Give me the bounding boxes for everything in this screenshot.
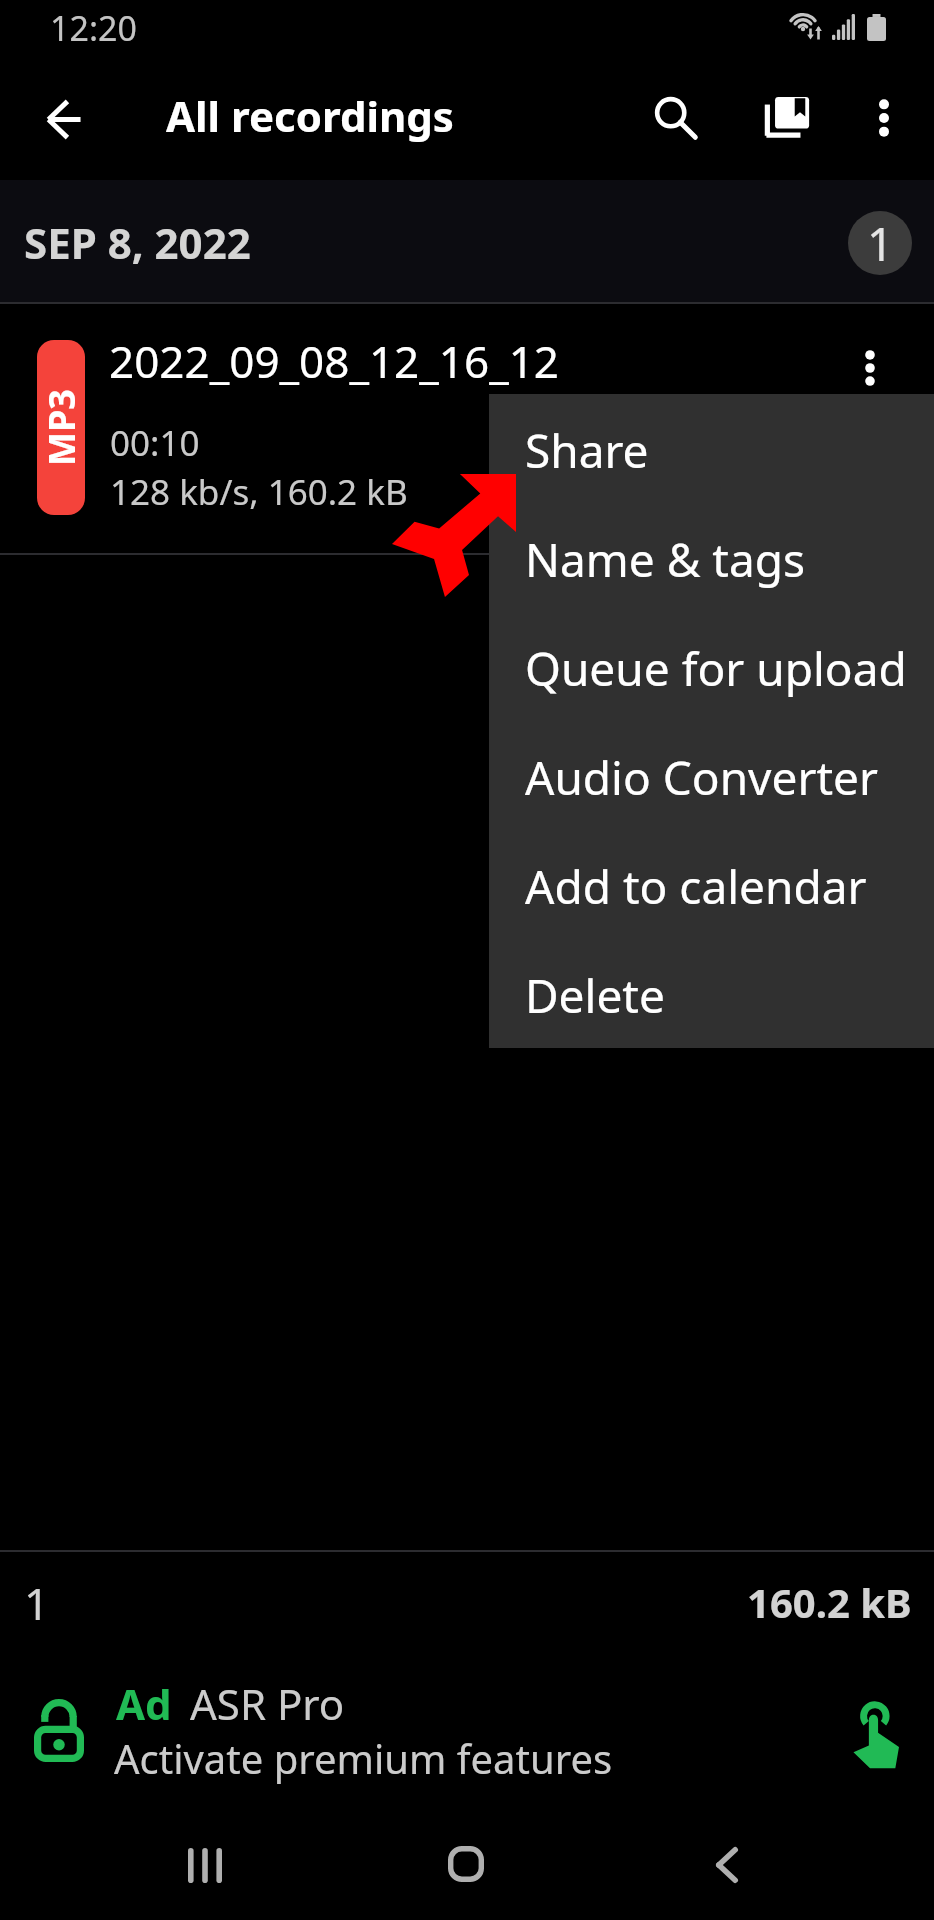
button[interactable]: Queue for upload — [489, 614, 934, 723]
staticText: Add to calendar — [525, 855, 867, 918]
staticText: SEP 8, 2022 — [24, 214, 251, 271]
staticText: Delete — [525, 964, 665, 1027]
staticText: Name & tags — [525, 528, 806, 591]
staticText: Activate premium features — [114, 1731, 613, 1785]
staticText: Share — [525, 419, 649, 482]
staticText: 1 — [24, 1573, 50, 1633]
staticText: 1 — [867, 212, 894, 275]
staticText: Queue for upload — [525, 637, 907, 700]
button[interactable]: Audio Converter — [489, 723, 934, 832]
staticText: MP3 — [37, 340, 85, 515]
button[interactable]: 1 — [848, 211, 912, 275]
button[interactable]: Recording library — [744, 74, 832, 162]
staticText: 00:10 — [110, 419, 200, 467]
button[interactable]: More options — [842, 76, 926, 160]
button[interactable]: Add to calendar — [489, 832, 934, 941]
button[interactable]: Navigate up — [22, 77, 106, 161]
staticText: 2022_09_08_12_16_12 — [109, 331, 560, 391]
button[interactable]: Recording options — [830, 328, 910, 408]
staticText: 12:20 — [50, 5, 137, 51]
staticText: Audio Converter — [525, 746, 878, 809]
staticText: 160.2 kB — [747, 1575, 912, 1629]
staticText: Ad — [116, 1675, 172, 1732]
staticText: ASR Pro — [190, 1675, 345, 1732]
button[interactable]: Name & tags — [489, 505, 934, 614]
button[interactable]: Delete — [489, 941, 934, 1050]
button[interactable]: Search — [632, 74, 720, 162]
button[interactable]: MP3 — [0, 304, 934, 553]
button[interactable]: Home — [420, 1818, 512, 1910]
button[interactable]: Back — [681, 1819, 773, 1911]
staticText: 128 kb/s, 160.2 kB — [110, 468, 408, 516]
button[interactable]: Ad — [0, 1648, 934, 1808]
button[interactable]: Share — [489, 396, 934, 505]
button[interactable]: Recent apps — [159, 1819, 251, 1911]
staticText: All recordings — [166, 87, 454, 144]
